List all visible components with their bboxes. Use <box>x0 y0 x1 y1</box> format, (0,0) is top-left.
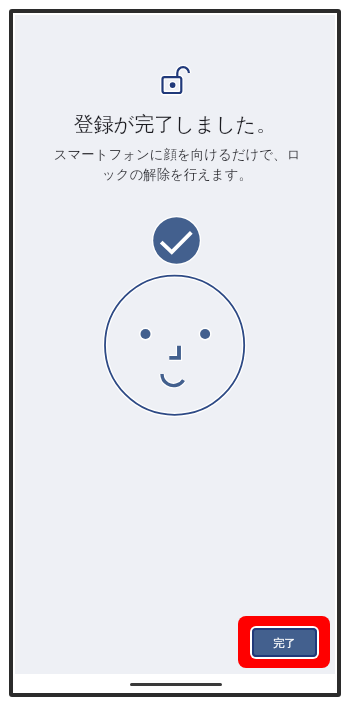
staticText: 登録が完了しました。 <box>15 112 335 137</box>
button[interactable]: 完了 <box>250 626 319 659</box>
staticText: スマートフォンに顔を向けるだけで、ロックの解除を行えます。 <box>51 146 303 183</box>
staticText: 完了 <box>273 636 296 650</box>
